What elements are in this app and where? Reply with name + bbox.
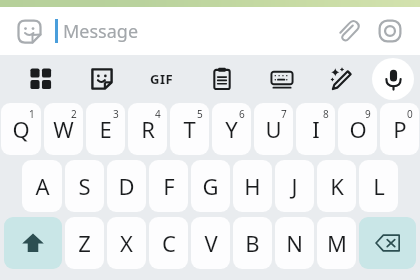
button[interactable]: Camera xyxy=(374,15,406,47)
button[interactable]: Y xyxy=(212,103,251,155)
button[interactable]: P xyxy=(380,103,419,155)
staticText: Message xyxy=(63,19,139,44)
button[interactable]: Sticker xyxy=(71,55,132,103)
button[interactable]: Q xyxy=(1,103,41,155)
button[interactable]: N xyxy=(275,217,314,269)
staticText: P xyxy=(393,114,407,144)
staticText: B xyxy=(245,228,260,258)
staticText: GIF xyxy=(150,70,174,88)
button[interactable]: O xyxy=(338,103,377,155)
button[interactable]: Backspace xyxy=(359,217,416,269)
staticText: V xyxy=(204,228,218,258)
staticText: W xyxy=(53,114,74,144)
button[interactable]: Clipboard xyxy=(192,55,252,103)
staticText: 8 xyxy=(323,107,329,121)
staticText: Y xyxy=(225,114,238,144)
button[interactable]: Shift xyxy=(4,217,62,269)
button[interactable]: V xyxy=(191,217,230,269)
button[interactable]: I xyxy=(296,103,335,155)
staticText: U xyxy=(265,114,282,144)
button[interactable]: Keyboard settings xyxy=(252,55,312,103)
button[interactable]: F xyxy=(149,160,188,212)
staticText: D xyxy=(118,171,135,201)
button[interactable]: Message xyxy=(63,19,332,44)
button[interactable]: S xyxy=(65,160,104,212)
staticText: 9 xyxy=(365,107,371,121)
staticText: 6 xyxy=(239,107,245,121)
staticText: O xyxy=(349,114,367,144)
button[interactable]: C xyxy=(149,217,188,269)
button[interactable]: W xyxy=(44,103,83,155)
staticText: N xyxy=(286,228,303,258)
button[interactable]: U xyxy=(254,103,293,155)
button[interactable]: Z xyxy=(65,217,104,269)
staticText: 4 xyxy=(155,107,161,121)
button[interactable]: T xyxy=(170,103,209,155)
staticText: I xyxy=(312,114,320,144)
staticText: M xyxy=(327,228,347,258)
staticText: E xyxy=(99,114,112,144)
button[interactable]: Apps xyxy=(10,55,71,103)
button[interactable]: H xyxy=(233,160,272,212)
staticText: 3 xyxy=(113,107,119,121)
button[interactable]: X xyxy=(107,217,146,269)
button[interactable]: E xyxy=(86,103,125,155)
button[interactable]: Voice input xyxy=(372,58,414,100)
staticText: Z xyxy=(78,228,91,258)
button[interactable]: M xyxy=(317,217,356,269)
button[interactable]: Attach xyxy=(332,15,364,47)
staticText: 5 xyxy=(197,107,203,121)
staticText: 0 xyxy=(407,107,413,121)
button[interactable]: B xyxy=(233,217,272,269)
staticText: G xyxy=(202,171,219,201)
button[interactable]: D xyxy=(107,160,146,212)
staticText: L xyxy=(373,171,385,201)
staticText: S xyxy=(78,171,91,201)
staticText: K xyxy=(330,171,344,201)
staticText: J xyxy=(291,171,298,201)
button[interactable]: GIF xyxy=(132,55,192,103)
button[interactable]: Magic edit xyxy=(312,55,372,103)
button[interactable]: G xyxy=(191,160,230,212)
button[interactable]: K xyxy=(317,160,356,212)
staticText: X xyxy=(120,228,133,258)
staticText: A xyxy=(35,171,50,201)
button[interactable]: L xyxy=(359,160,398,212)
button[interactable]: J xyxy=(275,160,314,212)
staticText: T xyxy=(183,114,196,144)
staticText: F xyxy=(163,171,175,201)
button[interactable]: A xyxy=(22,160,62,212)
staticText: 7 xyxy=(281,107,287,121)
staticText: 1 xyxy=(29,107,35,121)
staticText: H xyxy=(244,171,261,201)
staticText: Q xyxy=(12,114,30,144)
button[interactable]: R xyxy=(128,103,167,155)
staticText: C xyxy=(162,228,176,258)
button[interactable]: Stickers xyxy=(14,16,44,46)
staticText: 2 xyxy=(71,107,77,121)
staticText: R xyxy=(141,114,155,144)
